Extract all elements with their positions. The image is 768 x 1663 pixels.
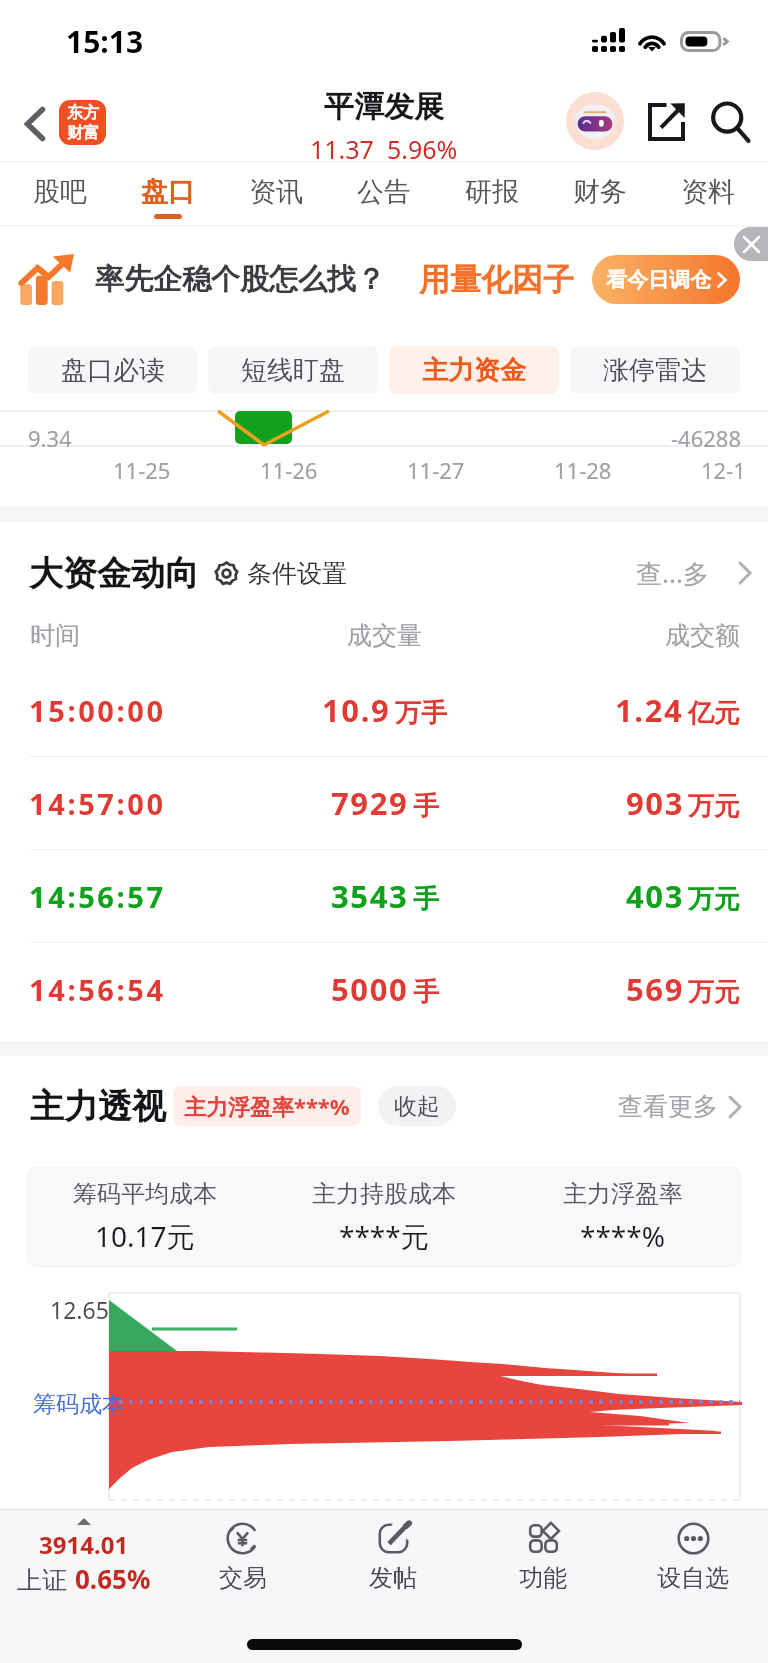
staticText: 上证 [17,1565,67,1596]
staticText: 11-25 [113,455,171,485]
button[interactable]: 涨停雷达 [570,346,740,394]
staticText: 资料 [681,175,735,209]
staticText: 条件设置 [247,558,347,589]
staticText: 5000 [331,968,409,1010]
staticText: 万手 [395,697,447,730]
staticText: 1.24 [615,689,684,731]
staticText: 3914.01 [39,1528,129,1561]
button[interactable]: 盘口 [114,163,222,227]
staticText: 筹码成本 [33,1390,125,1419]
button[interactable]: 公告 [330,163,438,227]
staticText: 9.34 [28,423,72,453]
button[interactable]: 资料 [654,163,762,227]
staticText: 11-27 [407,455,465,485]
button[interactable]: 设自选 [618,1510,768,1625]
staticText: 财务 [573,175,627,209]
staticText: 设自选 [657,1563,729,1593]
staticText: 盘口必读 [61,354,165,387]
staticText: 0.65% [75,1561,151,1596]
staticText: 10.17元 [95,1217,195,1255]
button[interactable]: 条件设置 [213,558,347,589]
staticText: 903 [626,782,684,824]
staticText: 7929 [331,782,409,824]
staticText: ****元 [339,1217,429,1255]
staticText: 3543 [331,875,409,917]
button[interactable]: 股吧 [6,163,114,227]
staticText: 12-1 [701,455,746,485]
staticText: 15:13 [66,21,144,62]
staticText: 手 [413,790,439,823]
staticText: 发帖 [369,1563,417,1593]
button[interactable]: Search [703,94,759,150]
staticText: 主力透视 [30,1085,166,1128]
button[interactable]: 发帖 [318,1510,468,1625]
staticText: 财富 [67,123,99,143]
staticText: 大资金动向 [29,552,199,595]
staticText: 403 [626,875,684,917]
staticText: 收起 [394,1092,440,1121]
button[interactable]: 查...多 [636,555,752,591]
button[interactable]: 14:56:54 [0,943,768,1035]
staticText: 功能 [519,1563,567,1593]
staticText: 股吧 [33,175,87,209]
staticText: 万元 [688,790,740,823]
staticText: 11-26 [260,455,318,485]
staticText: 万元 [688,976,740,1009]
staticText: -46288 [671,423,742,453]
button[interactable]: Share [638,94,694,150]
staticText: 交易 [219,1563,267,1593]
button[interactable]: 14:56:57 [0,850,768,942]
button[interactable]: 收起 [378,1086,456,1126]
staticText: 15:00:00 [29,691,166,730]
staticText: 用量化因子 [419,260,574,299]
staticText: 主力浮盈率 [563,1179,683,1209]
button[interactable]: 盘口必读 [28,346,197,394]
button[interactable]: 主力资金 [389,346,559,394]
button[interactable]: 研报 [438,163,546,227]
button[interactable]: Close ad [734,227,768,261]
staticText: 5.96% [387,132,458,163]
button[interactable]: 资讯 [222,163,330,227]
button[interactable]: 看今日调仓 [592,255,740,304]
staticText: 手 [413,976,439,1009]
staticText: 14:56:54 [29,970,166,1009]
staticText: 14:56:57 [29,877,166,916]
staticText: 短线盯盘 [241,354,345,387]
staticText: 率先企稳个股怎么找？ [95,261,385,298]
staticText: 11.37 [310,132,374,163]
staticText: 14:57:00 [29,784,166,823]
staticText: 手 [413,883,439,916]
staticText: 主力持股成本 [312,1179,456,1209]
button[interactable]: AI assistant [566,92,624,150]
button[interactable]: 东方 [59,100,106,145]
staticText: 时间 [30,620,266,651]
staticText: 公告 [357,175,411,209]
button[interactable]: 15:00:00 [0,664,768,756]
staticText: 东方 [67,103,99,123]
staticText: 成交额 [503,620,740,651]
staticText: 万元 [688,883,740,916]
button[interactable]: Back [8,97,62,151]
button[interactable]: 3914.01 [0,1510,167,1625]
staticText: 研报 [465,175,519,209]
staticText: 成交量 [266,620,503,651]
staticText: 主力资金 [422,354,526,387]
staticText: 查看更多 [618,1091,718,1122]
button[interactable]: 短线盯盘 [208,346,378,394]
staticText: ****% [580,1217,665,1255]
staticText: 涨停雷达 [603,354,707,387]
staticText: 10.9 [322,689,391,731]
staticText: 筹码平均成本 [73,1179,217,1209]
staticText: 11-28 [554,455,612,485]
button[interactable]: 14:57:00 [0,757,768,849]
staticText: 查...多 [636,555,709,591]
staticText: 亿元 [688,697,740,730]
staticText: 主力浮盈率***% [184,1091,350,1121]
button[interactable]: 主力浮盈率***% [173,1086,361,1126]
button[interactable]: 查看更多 [618,1091,742,1122]
staticText: 平潭发展 [324,88,444,126]
button[interactable]: 交易 [167,1510,318,1625]
staticText: 看今日调仓 [606,267,711,293]
button[interactable]: 功能 [468,1510,618,1625]
button[interactable]: 财务 [546,163,654,227]
